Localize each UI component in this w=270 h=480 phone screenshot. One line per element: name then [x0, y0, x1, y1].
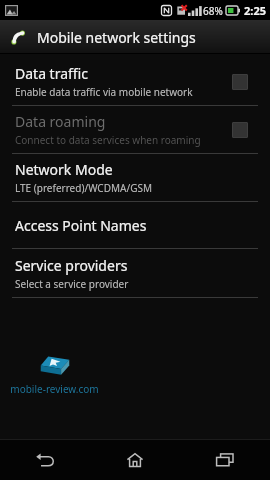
button[interactable]: Recents: [180, 439, 270, 480]
staticText: Data traffic: [15, 64, 88, 83]
staticText: Select a service provider: [15, 277, 129, 291]
staticText: 2:25: [244, 3, 266, 18]
staticText: Enable data traffic via mobile network: [15, 85, 193, 99]
staticText: LTE (preferred)/WCDMA/GSM: [15, 181, 152, 195]
button[interactable]: Service providers: [0, 249, 270, 297]
button[interactable]: Home: [90, 439, 180, 480]
staticText: 68%: [203, 4, 223, 18]
staticText: Mobile network settings: [37, 28, 196, 47]
button[interactable]: Data roaming: [0, 106, 270, 153]
button[interactable]: Data traffic: [232, 74, 248, 90]
staticText: mobile-review.com: [10, 382, 99, 396]
staticText: Data roaming: [15, 112, 106, 131]
button[interactable]: Access Point Names: [0, 202, 270, 248]
staticText: Access Point Names: [15, 216, 147, 235]
staticText: Service providers: [15, 256, 128, 275]
button[interactable]: Network Mode: [0, 154, 270, 201]
staticText: Network Mode: [15, 160, 113, 179]
button[interactable]: Back: [0, 439, 90, 480]
button[interactable]: Data roaming: [232, 122, 248, 138]
staticText: Connect to data services when roaming: [15, 133, 201, 147]
button[interactable]: Data traffic: [0, 58, 270, 105]
